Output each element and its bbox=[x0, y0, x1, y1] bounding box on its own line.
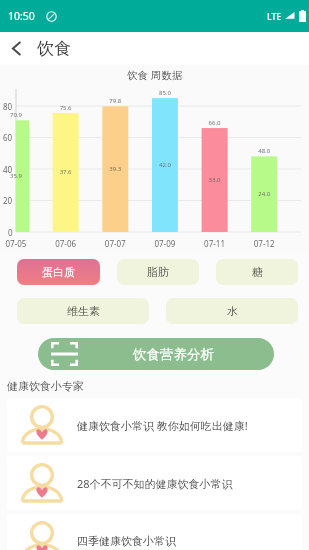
button[interactable]: 糖 bbox=[216, 259, 298, 285]
staticText: 10:50 bbox=[8, 9, 35, 23]
button[interactable]: 维生素 bbox=[17, 298, 149, 324]
staticText: 水 bbox=[227, 304, 238, 318]
staticText: 饮食 周数据 bbox=[127, 68, 183, 82]
button[interactable]: 28个不可不知的健康饮食小常识 bbox=[7, 456, 302, 510]
staticText: 蛋白质 bbox=[42, 265, 75, 279]
button[interactable]: 蛋白质 bbox=[17, 259, 100, 285]
staticText: 维生素 bbox=[67, 304, 100, 318]
staticText: 饮食营养分析 bbox=[133, 346, 214, 363]
button[interactable]: 脂肪 bbox=[117, 259, 199, 285]
button[interactable]: 水 bbox=[166, 298, 298, 324]
staticText: 健康饮食小专家 bbox=[7, 379, 84, 393]
staticText: 糖 bbox=[252, 265, 263, 279]
staticText: 健康饮食小常识 教你如何吃出健康! bbox=[77, 418, 248, 433]
button[interactable]: 四季健康饮食小常识 bbox=[7, 514, 302, 550]
staticText: 脂肪 bbox=[147, 265, 169, 279]
button[interactable]: 健康饮食小常识 教你如何吃出健康! bbox=[7, 398, 302, 452]
staticText: LTE bbox=[267, 10, 282, 22]
button[interactable]: Back bbox=[0, 32, 33, 65]
staticText: 四季健康饮食小常识 bbox=[77, 534, 176, 548]
staticText: 28个不可不知的健康饮食小常识 bbox=[77, 476, 233, 491]
staticText: 饮食 bbox=[37, 38, 71, 59]
button[interactable]: 饮食营养分析 bbox=[38, 338, 274, 370]
